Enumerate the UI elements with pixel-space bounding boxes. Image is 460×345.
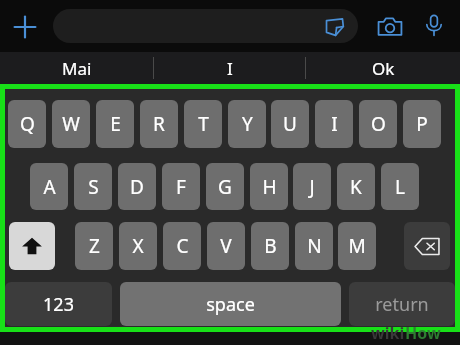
button[interactable]: V [207,222,245,270]
button[interactable]: I [153,52,306,84]
button[interactable]: K [337,163,375,210]
staticText: G [218,174,232,200]
staticText: M [348,233,366,259]
button[interactable]: Camera [374,11,406,43]
staticText: R [153,111,165,137]
button[interactable]: Y [228,100,266,148]
button[interactable]: H [250,163,288,210]
staticText: space [206,292,255,317]
staticText: L [395,174,405,200]
button[interactable]: S [74,163,112,210]
staticText: I [331,111,338,137]
staticText: T [198,111,209,137]
button[interactable]: G [206,163,244,210]
staticText: How [405,322,441,344]
staticText: return [375,292,429,317]
button[interactable]: E [96,100,134,148]
staticText: J [309,174,315,200]
button[interactable]: W [52,100,90,148]
staticText: wiki [371,322,405,344]
staticText: 123 [43,292,74,317]
button[interactable]: 123 [5,282,112,326]
staticText: Y [242,111,253,137]
staticText: C [176,233,189,259]
staticText: Z [89,233,100,259]
staticText: X [132,233,144,259]
staticText: B [264,233,277,259]
button[interactable]: Shift [9,222,55,270]
button[interactable]: T [184,100,222,148]
button[interactable]: R [140,100,178,148]
staticText: Mai [62,57,92,80]
button[interactable]: Add attachment [8,10,42,44]
button[interactable]: Ok [307,52,460,84]
button[interactable]: A [30,163,68,210]
staticText: O [371,111,386,137]
staticText: W [62,111,80,137]
staticText: N [307,233,322,259]
staticText: A [43,174,56,200]
button[interactable]: Stickers [322,14,346,38]
staticText: F [176,174,186,200]
button[interactable]: return [349,282,455,326]
button[interactable]: J [293,163,331,210]
button[interactable]: P [403,100,441,148]
button[interactable]: N [295,222,333,270]
staticText: U [283,111,297,137]
button[interactable]: D [118,163,156,210]
staticText: D [130,174,144,200]
staticText: S [88,174,99,200]
button[interactable]: O [359,100,397,148]
button[interactable]: M [338,222,376,270]
button[interactable]: Voice message [419,10,449,40]
button[interactable]: C [163,222,201,270]
button[interactable]: Mai [0,52,153,84]
staticText: H [262,174,277,200]
button[interactable]: F [162,163,200,210]
button[interactable]: L [381,163,419,210]
button[interactable]: Z [75,222,113,270]
staticText: I [227,57,233,80]
button[interactable]: Backspace [404,222,450,270]
button[interactable]: space [120,282,341,326]
button[interactable]: B [251,222,289,270]
button[interactable]: X [119,222,157,270]
button[interactable] [53,9,358,43]
staticText: K [350,174,362,200]
staticText: E [110,111,121,137]
button[interactable]: Q [8,100,46,148]
button[interactable]: I [315,100,353,148]
staticText: Q [20,111,35,137]
button[interactable]: U [271,100,309,148]
staticText: Ok [372,57,395,80]
staticText: V [220,233,232,259]
staticText: P [416,111,428,137]
